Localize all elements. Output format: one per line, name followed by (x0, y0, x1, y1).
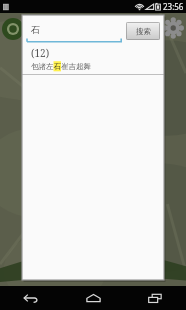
staticText: 搜索 (136, 27, 151, 36)
button[interactable]: Recent apps (124, 286, 186, 310)
button[interactable]: Back (0, 286, 62, 310)
staticText: 石 (31, 24, 40, 35)
button[interactable]: 包諸左石崔吉超舞 (31, 62, 160, 71)
button[interactable]: 石 (27, 18, 122, 43)
staticText: 23:56 (163, 1, 184, 12)
staticText: (12) (31, 46, 50, 60)
button[interactable]: Home (62, 286, 124, 310)
button[interactable]: Settings (164, 17, 186, 39)
button[interactable]: Search location marker (1, 17, 25, 41)
button[interactable]: 搜索 (126, 22, 160, 40)
staticText: 包諸左石崔吉超舞 (31, 62, 91, 71)
